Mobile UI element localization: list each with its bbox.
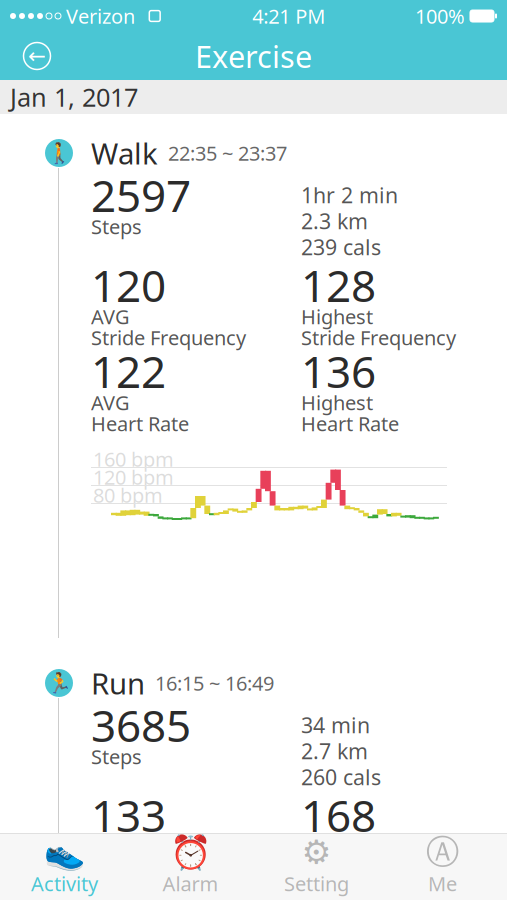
staticText: Stride Frequency <box>91 324 246 351</box>
staticText: Setting <box>284 870 349 897</box>
staticText: 2.7 km <box>301 737 368 765</box>
staticText: Stride Frequency <box>301 324 456 351</box>
staticText: 34 min <box>301 711 370 739</box>
staticText: 122 <box>91 342 166 400</box>
staticText: 120 bpm <box>93 464 174 490</box>
staticText: 22:35 ~ 23:37 <box>168 140 287 166</box>
staticText: Highest <box>301 833 373 860</box>
staticText: AVG <box>91 303 130 330</box>
staticText: Steps <box>91 743 142 770</box>
staticText: Steps <box>91 213 142 240</box>
staticText: Activity <box>31 870 98 897</box>
staticText: ← <box>28 44 46 68</box>
staticText: 16:15 ~ 16:49 <box>155 670 274 696</box>
staticText: Alarm <box>162 870 218 897</box>
staticText: Stride Frequency <box>91 854 246 881</box>
staticText: Heart Rate <box>301 410 399 437</box>
staticText: 128 <box>301 256 376 314</box>
staticText: 3685 <box>91 696 191 754</box>
staticText: AVG <box>91 389 130 416</box>
staticText: Heart Rate <box>91 410 189 437</box>
staticText: 133 <box>91 786 166 844</box>
staticText: ⚙ <box>301 833 331 871</box>
staticText: Ⓐ <box>426 832 459 873</box>
staticText: 🚶 <box>46 142 71 164</box>
staticText: 260 cals <box>301 763 381 791</box>
button[interactable]: Ⓐ <box>379 834 505 900</box>
staticText: Run <box>91 663 145 702</box>
staticText: AVG <box>91 833 130 860</box>
staticText: 136 <box>301 342 376 400</box>
staticText: Verizon <box>66 3 135 29</box>
staticText: Exercise <box>195 36 312 76</box>
staticText: Me <box>428 870 457 897</box>
staticText: Stride Frequency <box>301 854 456 881</box>
staticText: Highest <box>301 389 373 416</box>
button[interactable]: ⏰ <box>127 834 253 900</box>
staticText: 2597 <box>91 166 191 224</box>
staticText: Walk <box>91 133 158 172</box>
staticText: ⏰ <box>169 833 211 871</box>
staticText: 2.3 km <box>301 207 368 235</box>
button[interactable]: 👟 <box>1 834 127 900</box>
staticText: 👟 <box>43 833 85 871</box>
staticText: 239 cals <box>301 233 381 261</box>
staticText: 168 <box>301 786 376 844</box>
staticText: 100% <box>415 3 465 29</box>
button[interactable]: Back <box>14 33 60 79</box>
staticText: 🏃 <box>46 672 71 694</box>
staticText: Jan 1, 2017 <box>10 80 138 114</box>
staticText: 80 bpm <box>93 482 163 508</box>
button[interactable]: ⚙ <box>253 834 379 900</box>
staticText: 120 <box>91 256 166 314</box>
staticText: 1hr 2 min <box>301 181 398 209</box>
staticText: 4:21 PM <box>252 3 325 29</box>
staticText: 160 bpm <box>93 446 174 472</box>
staticText: Highest <box>301 303 373 330</box>
